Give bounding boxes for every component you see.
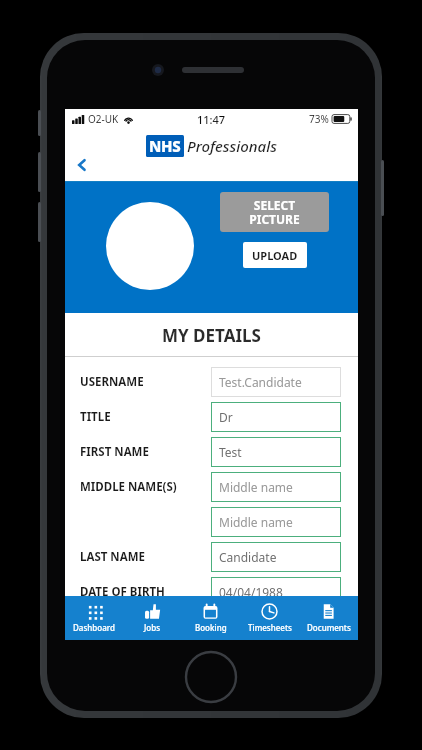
button[interactable]: FIRST NAME [65,437,358,467]
button[interactable]: TITLE [65,402,358,432]
staticText: UPLOAD [252,248,298,263]
staticText: Candidate [219,549,277,565]
button[interactable]: Profile picture [106,202,194,290]
staticText: Middle name [219,514,293,530]
button[interactable]: Documents [299,596,358,640]
button[interactable]: Timesheets [240,596,299,640]
staticText: Jobs [144,622,161,633]
staticText: MIDDLE NAME(S) [80,479,177,495]
staticText: 11:47 [197,112,226,127]
staticText: TITLE [80,409,111,425]
button[interactable]: SELECT PICTURE [220,192,329,232]
button[interactable]: Back [65,148,99,182]
button[interactable]: MIDDLE NAME(S) [65,472,358,502]
button[interactable]: Jobs [123,596,181,640]
staticText: Dr [219,409,233,425]
staticText: Test.Candidate [219,374,302,390]
staticText: Documents [307,622,351,633]
staticText: O2-UK [88,112,119,126]
staticText: DATE OF BIRTH [80,584,165,600]
staticText: Timesheets [248,622,292,633]
staticText: FIRST NAME [80,444,149,460]
button[interactable]: UPLOAD [243,242,307,268]
staticText: MY DETAILS [162,324,261,347]
button[interactable]: Booking [181,596,240,640]
button[interactable]: Dashboard [65,596,123,640]
button[interactable]: DATE OF BIRTH [65,577,358,607]
staticText: 73% [309,112,329,126]
staticText: Middle name [219,479,293,495]
staticText: SELECT PICTURE [249,197,300,228]
staticText: NHS [149,136,181,156]
button[interactable]: USERNAME [65,367,358,397]
staticText: Professionals [187,136,277,156]
staticText: LAST NAME [80,549,145,565]
staticText: Booking [195,622,227,633]
staticText: USERNAME [80,374,144,390]
staticText: Dashboard [73,622,115,633]
staticText: 04/04/1988 [219,584,283,600]
button[interactable]: Middle name [65,507,358,537]
button[interactable]: LAST NAME [65,542,358,572]
staticText: Test [219,444,242,460]
